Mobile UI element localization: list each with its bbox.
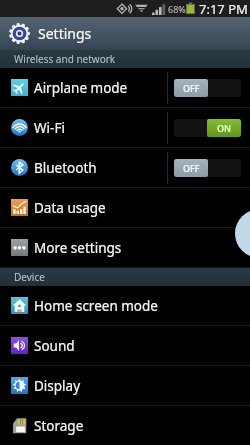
staticText: Wi-Fi: [34, 119, 65, 137]
button[interactable]: Bluetooth: [0, 148, 250, 187]
button[interactable]: Off: [174, 159, 241, 177]
staticText: Settings: [38, 24, 92, 43]
button[interactable]: Storage: [0, 406, 250, 445]
button[interactable]: Wi-Fi: [0, 108, 250, 147]
staticText: 7:17 PM: [199, 0, 248, 17]
staticText: Sound: [34, 337, 75, 355]
staticText: Display: [34, 377, 81, 395]
staticText: More settings: [34, 239, 122, 257]
staticText: Wireless and network: [14, 52, 116, 66]
staticText: OFF: [183, 82, 200, 94]
staticText: Storage: [34, 417, 84, 435]
staticText: Data usage: [34, 199, 106, 217]
other: Scroll: [235, 209, 250, 258]
button[interactable]: On: [174, 119, 241, 137]
staticText: Airplane mode: [34, 79, 128, 97]
button[interactable]: Home screen mode: [0, 286, 250, 325]
button[interactable]: More settings: [0, 228, 250, 267]
button[interactable]: Airplane mode: [0, 68, 250, 107]
staticText: Device: [14, 270, 45, 284]
staticText: Bluetooth: [34, 159, 97, 177]
staticText: 68%: [168, 3, 186, 15]
button[interactable]: Display: [0, 366, 250, 405]
button[interactable]: Off: [174, 79, 241, 97]
staticText: ON: [217, 122, 232, 134]
button[interactable]: Sound: [0, 326, 250, 365]
button[interactable]: Data usage: [0, 188, 250, 227]
staticText: OFF: [183, 162, 200, 174]
staticText: Home screen mode: [34, 297, 158, 315]
